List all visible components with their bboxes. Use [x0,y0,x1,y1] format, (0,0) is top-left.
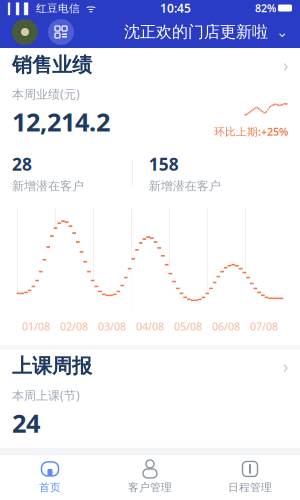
staticText: 158 [149,153,179,176]
button[interactable]: 日程管理 [200,455,300,499]
staticText: 客户管理 [128,481,172,494]
staticText: 03/08 [98,319,126,333]
staticText: › [283,355,288,378]
button[interactable]: 上课周报 [0,349,300,383]
staticText: 06/08 [212,319,240,333]
button[interactable]: 客户管理 [100,455,200,499]
button[interactable]: 首页 [0,455,100,499]
staticText: ▎▍▌ 红豆电信 ᯤ [8,1,96,15]
staticText: 上课周报 [12,354,92,378]
staticText: 首页 [39,481,61,494]
staticText: 环比上期:+25% [214,124,288,139]
button[interactable]: 销售业绩 [0,48,300,82]
button[interactable]: Scan code [38,19,74,45]
staticText: 新增潜在客户 [12,179,84,193]
staticText: 07/08 [250,319,278,333]
staticText: 05/08 [174,319,202,333]
staticText: 28 [12,153,32,176]
staticText: 本周上课(节) [12,387,80,403]
button[interactable]: Profile [12,19,38,45]
staticText: 01/08 [22,319,50,333]
staticText: 新增潜在客户 [149,179,221,193]
button[interactable]: 沈正欢的门店更新啦 [124,22,288,42]
staticText: 销售业绩 [12,53,92,77]
staticText: 日程管理 [228,481,272,494]
staticText: 本周业绩(元) [12,86,80,102]
staticText: › [283,53,288,76]
staticText: 10:45 [160,0,191,16]
staticText: 04/08 [136,319,164,333]
staticText: 12,214.2 [12,105,110,138]
staticText: 82% [255,1,276,15]
staticText: 24 [12,406,40,440]
staticText: ⌄ [276,24,288,40]
staticText: 02/08 [60,319,88,333]
staticText: 沈正欢的门店更新啦 [124,22,268,42]
